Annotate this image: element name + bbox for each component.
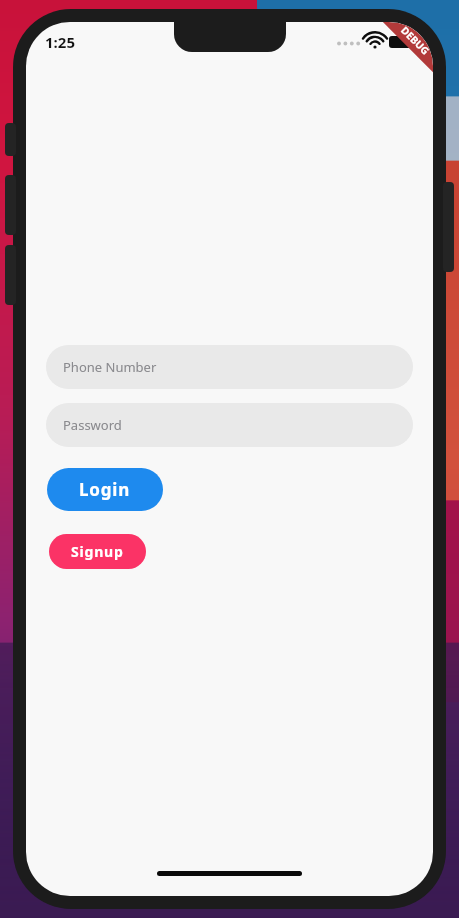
staticText: Password <box>63 416 122 434</box>
button[interactable]: Signup <box>49 534 146 569</box>
staticText: Phone Number <box>63 358 157 376</box>
staticText: 1:25 <box>45 32 75 52</box>
button[interactable]: Password <box>46 403 413 447</box>
button[interactable]: Login <box>47 468 163 511</box>
staticText: Signup <box>71 542 124 561</box>
staticText: DEBUG <box>398 23 433 58</box>
staticText: Login <box>79 478 131 501</box>
button[interactable]: Phone Number <box>46 345 413 389</box>
